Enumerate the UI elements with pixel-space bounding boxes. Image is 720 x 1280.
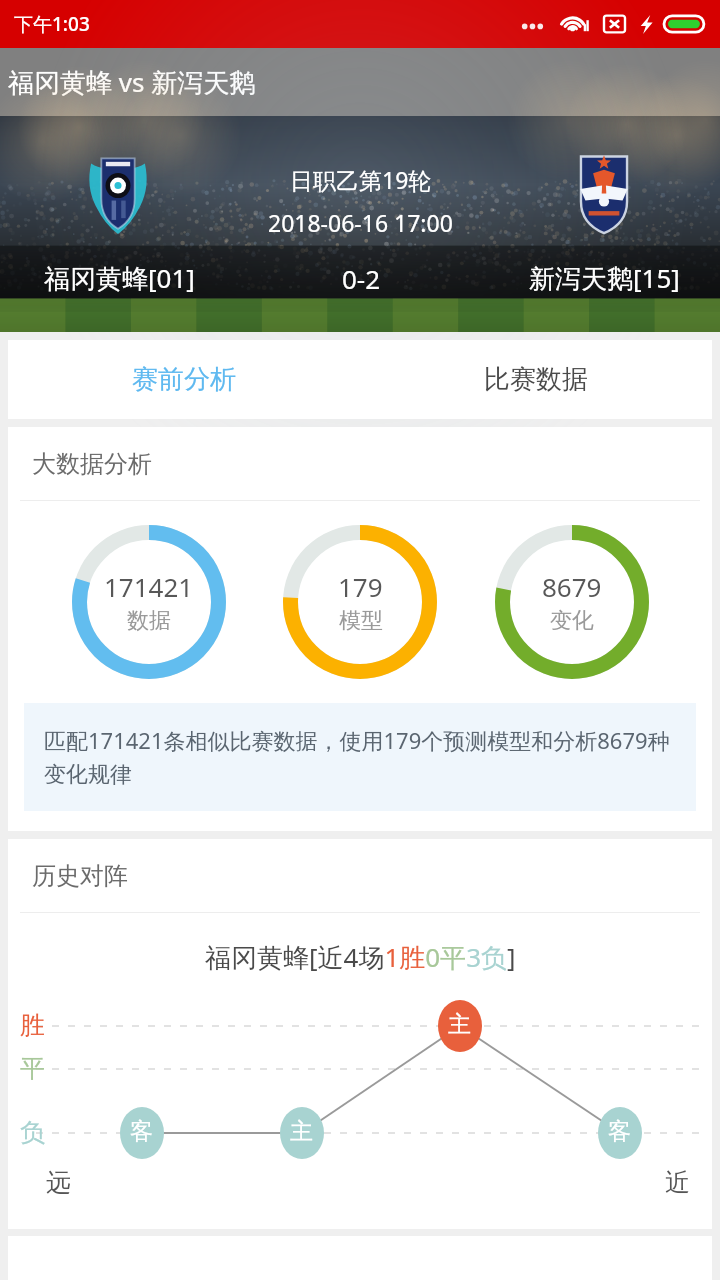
staticText: 平 bbox=[20, 1053, 45, 1084]
button[interactable]: 赛前分析 bbox=[8, 340, 360, 419]
staticText: 远 bbox=[46, 1167, 71, 1198]
staticText: 日职乙第19轮 bbox=[290, 164, 432, 195]
staticText: 大数据分析 bbox=[32, 449, 152, 479]
staticText: 胜 bbox=[20, 1010, 45, 1041]
staticText: 福冈黄蜂 vs 新泻天鹅 bbox=[8, 64, 256, 100]
staticText: 171421 bbox=[104, 569, 194, 604]
staticText: 客 bbox=[608, 1117, 631, 1146]
staticText: 历史对阵 bbox=[32, 861, 128, 891]
staticText: 0-2 bbox=[342, 261, 381, 296]
staticText: 8679 bbox=[542, 569, 602, 604]
staticText: 赛前分析 bbox=[132, 363, 236, 396]
staticText: 匹配171421条相似比赛数据，使用179个预测模型和分析8679种变化规律 bbox=[44, 725, 676, 789]
staticText: 负 bbox=[20, 1117, 45, 1148]
button[interactable]: 比赛数据 bbox=[360, 340, 712, 419]
staticText: 变化 bbox=[550, 607, 594, 635]
staticText: 下午1:03 bbox=[14, 11, 90, 37]
staticText: 客 bbox=[130, 1117, 153, 1146]
staticText: 179 bbox=[338, 569, 383, 604]
staticText: 近 bbox=[665, 1167, 690, 1198]
staticText: 主 bbox=[448, 1010, 471, 1039]
staticText: 福冈黄蜂[近4场1胜0平3负] bbox=[205, 939, 516, 975]
staticText: 主 bbox=[290, 1117, 313, 1146]
staticText: 福冈黄蜂[01] bbox=[44, 260, 195, 296]
staticText: 2018-06-16 17:00 bbox=[268, 207, 453, 238]
staticText: 新泻天鹅[15] bbox=[529, 260, 680, 296]
staticText: 数据 bbox=[127, 607, 171, 635]
staticText: 比赛数据 bbox=[484, 363, 588, 396]
staticText: 模型 bbox=[339, 607, 383, 635]
